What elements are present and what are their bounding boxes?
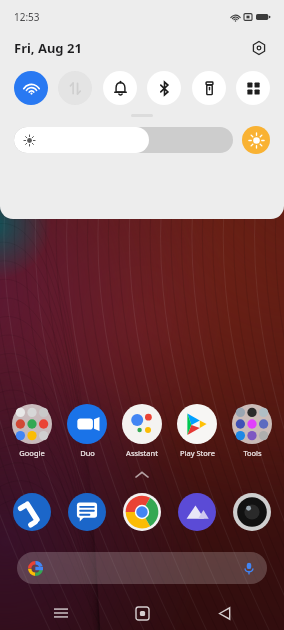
- staticText: Google: [19, 448, 45, 458]
- button[interactable]: Camera: [228, 488, 276, 536]
- button[interactable]: All settings: [236, 71, 270, 105]
- staticText: Assistant: [126, 448, 158, 458]
- button[interactable]: Back: [203, 596, 245, 630]
- staticText: 12:53: [14, 10, 40, 24]
- button[interactable]: Home: [121, 596, 163, 630]
- button[interactable]: Duo: [61, 404, 113, 458]
- button[interactable]: Play Store: [171, 404, 223, 458]
- button[interactable]: Chrome: [118, 488, 166, 536]
- button[interactable]: Settings: [248, 37, 270, 59]
- button[interactable]: Wi-Fi: [14, 71, 48, 105]
- staticText: Play Store: [180, 448, 215, 458]
- staticText: Fri, Aug 21: [14, 39, 82, 57]
- button[interactable]: Flashlight: [192, 71, 226, 105]
- button[interactable]: Bluetooth: [147, 71, 181, 105]
- button[interactable]: Gallery: [173, 488, 221, 536]
- button[interactable]: Mobile data: [58, 71, 92, 105]
- staticText: Duo: [80, 448, 95, 458]
- button[interactable]: Phone: [8, 488, 56, 536]
- button[interactable]: Google: [6, 404, 58, 458]
- button[interactable]: Recents: [40, 596, 82, 630]
- button[interactable]: Auto brightness: [242, 126, 270, 154]
- button[interactable]: Tools: [226, 404, 278, 458]
- staticText: Tools: [243, 448, 262, 458]
- button[interactable]: Brightness: [14, 127, 233, 153]
- button[interactable]: Messages: [63, 488, 111, 536]
- button[interactable]: Assistant: [116, 404, 168, 458]
- button[interactable]: Ringer: [103, 71, 137, 105]
- button[interactable]: [17, 552, 267, 584]
